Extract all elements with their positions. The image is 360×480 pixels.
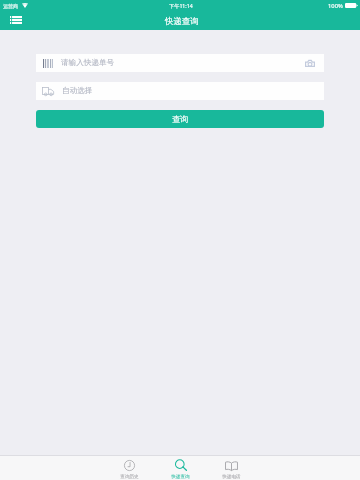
staticText: 自动选择 xyxy=(62,86,93,96)
button[interactable]: 自动选择 xyxy=(36,82,324,100)
button[interactable]: Scan barcode xyxy=(302,55,318,71)
staticText: 快递电话 xyxy=(222,474,241,480)
staticText: 下午11:14 xyxy=(169,2,193,9)
button[interactable]: 快递查询 xyxy=(155,456,206,480)
button[interactable]: 查询 xyxy=(36,110,324,128)
button[interactable]: Menu xyxy=(5,12,27,27)
staticText: 100% xyxy=(328,2,343,10)
staticText: 运营商 xyxy=(3,3,18,9)
staticText: 快递查询 xyxy=(171,474,190,480)
staticText: 快递查询 xyxy=(165,16,199,27)
staticText: 查询历史 xyxy=(120,474,139,480)
staticText: 查询 xyxy=(172,114,188,124)
button[interactable]: 查询历史 xyxy=(104,456,155,480)
button[interactable]: 快递电话 xyxy=(206,456,257,480)
staticText: 请输入快递单号 xyxy=(61,58,115,68)
